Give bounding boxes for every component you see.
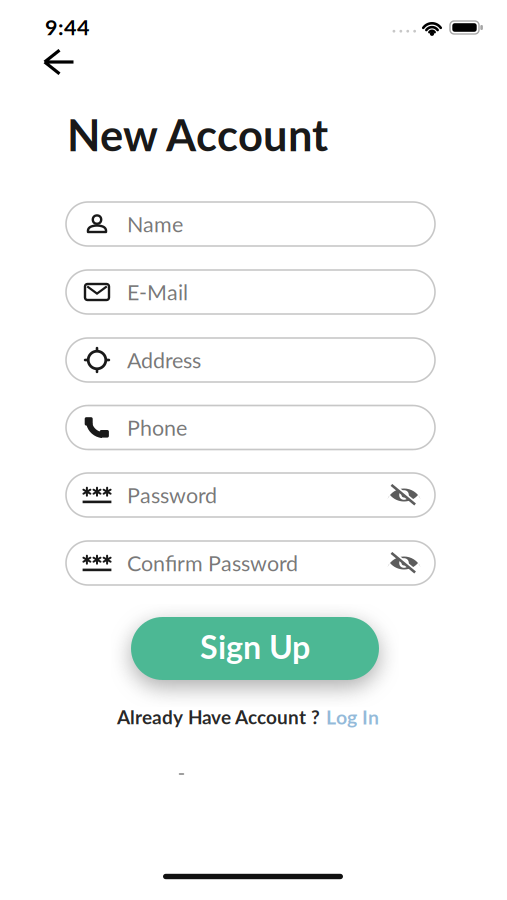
staticText: Log In bbox=[326, 705, 379, 729]
button[interactable]: Password bbox=[66, 473, 435, 517]
button[interactable]: Name bbox=[66, 202, 435, 246]
staticText: Name bbox=[127, 211, 183, 237]
staticText: Already Have Account ? bbox=[117, 706, 320, 728]
button[interactable]: Show password bbox=[389, 552, 419, 574]
staticText: E-Mail bbox=[127, 279, 188, 305]
button[interactable]: Address bbox=[66, 338, 435, 382]
staticText: New Account bbox=[67, 108, 328, 161]
staticText: Phone bbox=[127, 415, 187, 440]
staticText: Sign Up bbox=[200, 627, 310, 666]
button[interactable]: Sign Up bbox=[131, 617, 379, 680]
button[interactable]: E-Mail bbox=[66, 270, 435, 314]
staticText: 9:44 bbox=[45, 14, 90, 40]
button[interactable]: Log In bbox=[326, 705, 379, 729]
button[interactable]: Phone bbox=[66, 405, 435, 449]
button[interactable]: Back bbox=[43, 49, 77, 75]
staticText: Password bbox=[127, 482, 217, 508]
button[interactable]: Show password bbox=[389, 484, 419, 506]
staticText: Address bbox=[127, 347, 201, 373]
staticText: Confirm Password bbox=[127, 550, 298, 576]
button[interactable]: Confirm Password bbox=[66, 541, 435, 585]
